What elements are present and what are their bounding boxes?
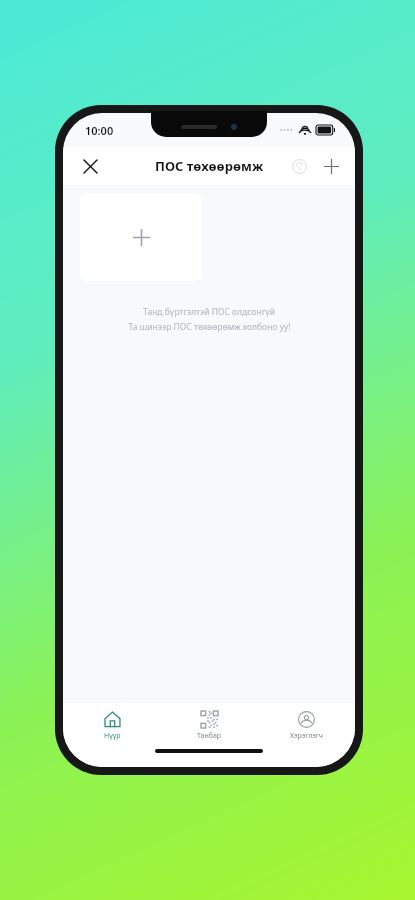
button[interactable]: Хэрэглэгч	[258, 707, 355, 745]
button[interactable]: Нүүр	[63, 707, 161, 745]
button[interactable]: Close	[73, 149, 107, 183]
staticText: Танд бүртгэлтэй ПОС олдсонгүй	[143, 306, 275, 318]
button[interactable]: Add POS device	[315, 150, 347, 182]
staticText: 10:00	[85, 123, 114, 138]
staticText: Танбар	[197, 731, 222, 741]
button[interactable]: Help	[283, 150, 315, 182]
staticText: Хэрэглэгч	[290, 731, 323, 741]
staticText: Нүүр	[104, 731, 121, 741]
staticText: Та шинээр ПОС төхөөрөмж холбоно уу!	[128, 321, 291, 333]
button[interactable]: Танбар	[161, 707, 258, 745]
staticText: ПОС төхөөрөмж	[155, 157, 264, 175]
button[interactable]: Add POS device	[80, 193, 202, 281]
